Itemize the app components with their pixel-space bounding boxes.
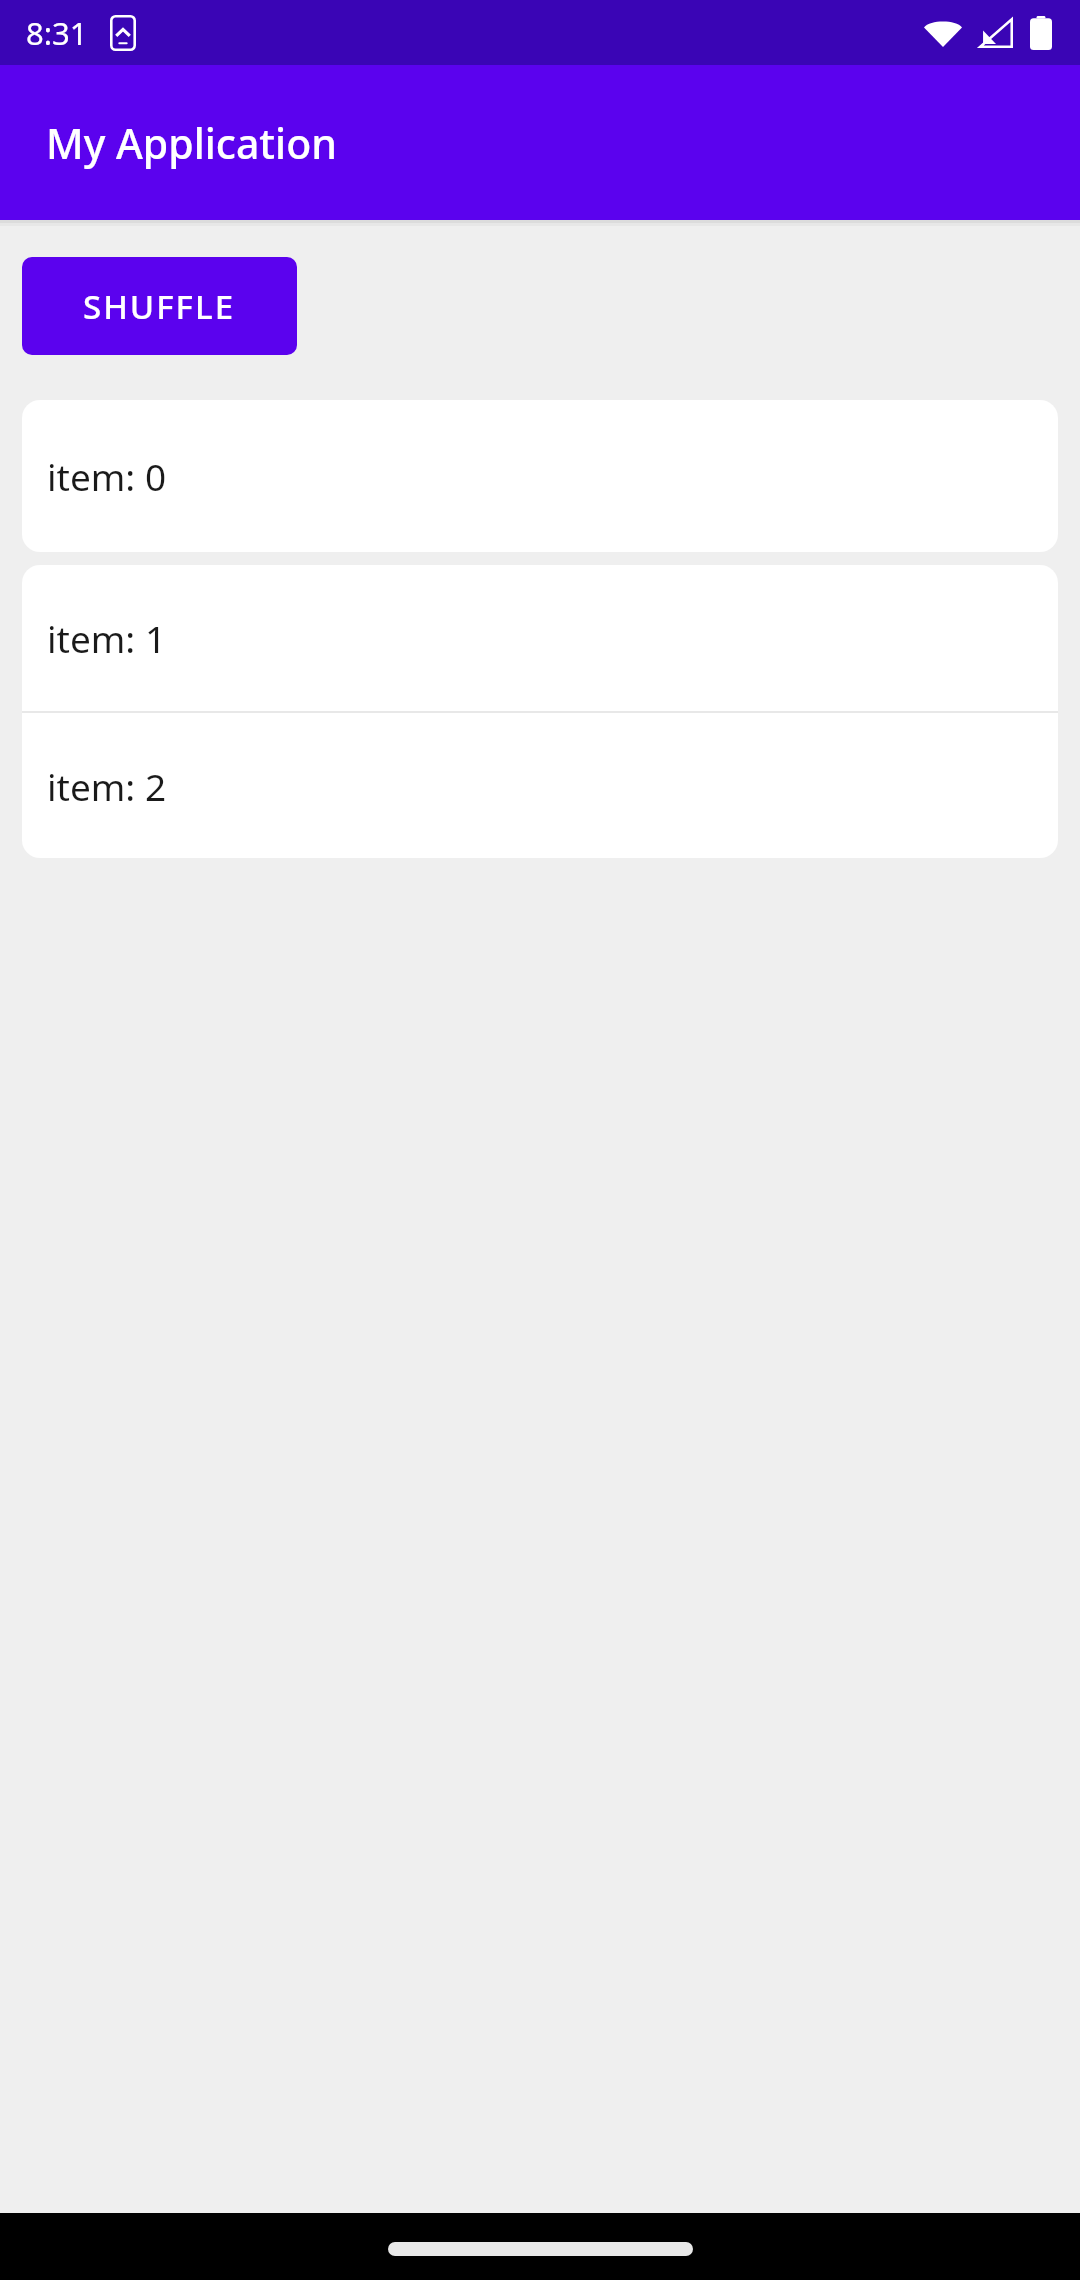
- staticText: SHUFFLE: [83, 284, 236, 329]
- button[interactable]: item: 2: [22, 713, 1058, 858]
- button[interactable]: item: 1: [22, 565, 1058, 711]
- button[interactable]: Home: [388, 2242, 693, 2256]
- staticText: item: 1: [47, 613, 167, 663]
- button[interactable]: item: 0: [22, 400, 1058, 552]
- staticText: item: 0: [47, 451, 167, 501]
- staticText: My Application: [46, 115, 337, 171]
- staticText: item: 2: [47, 761, 167, 811]
- staticText: 8:31: [26, 12, 88, 54]
- button[interactable]: SHUFFLE: [22, 257, 297, 355]
